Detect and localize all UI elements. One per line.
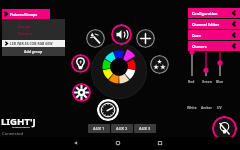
staticText: LIGHT'J (1, 115, 36, 128)
staticText: Blue (216, 79, 224, 83)
staticText: Configuration (192, 11, 218, 16)
button[interactable]: Fixtures/Groups (2, 9, 50, 19)
button[interactable]: Configuration (188, 8, 240, 18)
button[interactable]: LED PAR-56 COB RGB 60W (2, 40, 65, 47)
button[interactable]: Audio (111, 24, 132, 45)
staticText: Red (188, 79, 195, 83)
staticText: INTERNATIONAL (12, 126, 31, 129)
staticText: Channel Editor (192, 22, 220, 27)
staticText: Fixtures (18, 31, 33, 36)
staticText: LED PAR-56 COB RGB 60W (10, 41, 53, 46)
button[interactable]: AUX 1 (88, 124, 110, 133)
button[interactable]: Effects (150, 55, 169, 74)
button[interactable]: Channel Editor (188, 19, 240, 29)
button[interactable]: Blue (214, 49, 226, 81)
button[interactable]: Light (71, 54, 90, 73)
staticText: Green (202, 79, 212, 83)
button[interactable]: Recents (154, 137, 166, 149)
staticText: Connected (2, 131, 24, 137)
staticText: Fixtures/Groups (10, 12, 38, 17)
button[interactable]: Add group (2, 47, 65, 56)
button[interactable]: AUX 3 (134, 124, 156, 133)
button[interactable]: Red (186, 49, 198, 81)
button[interactable]: Back (70, 137, 82, 149)
staticText: Amber (201, 105, 213, 109)
staticText: AUX 1 (93, 126, 105, 131)
button[interactable]: Home (112, 137, 124, 149)
button[interactable]: Cues (188, 30, 240, 40)
staticText: Chasers (192, 44, 207, 49)
button[interactable]: Blackout (212, 116, 237, 141)
button[interactable]: Wand (86, 29, 105, 48)
button[interactable]: Speed (97, 99, 119, 121)
staticText: AUX 2 (116, 126, 128, 131)
staticText: UV (217, 105, 222, 109)
staticText: Cues (192, 33, 201, 38)
staticText: Groups (18, 24, 31, 29)
staticText: AUX 3 (139, 126, 151, 131)
button[interactable]: AUX 2 (111, 124, 133, 133)
button[interactable]: Color wheel (98, 46, 140, 88)
button[interactable]: Move (136, 29, 155, 48)
button[interactable]: Green (200, 49, 212, 81)
staticText: White (187, 105, 197, 109)
staticText: Add group (24, 49, 43, 54)
button[interactable]: Chasers (188, 41, 240, 51)
button[interactable]: Brightness (72, 83, 91, 102)
